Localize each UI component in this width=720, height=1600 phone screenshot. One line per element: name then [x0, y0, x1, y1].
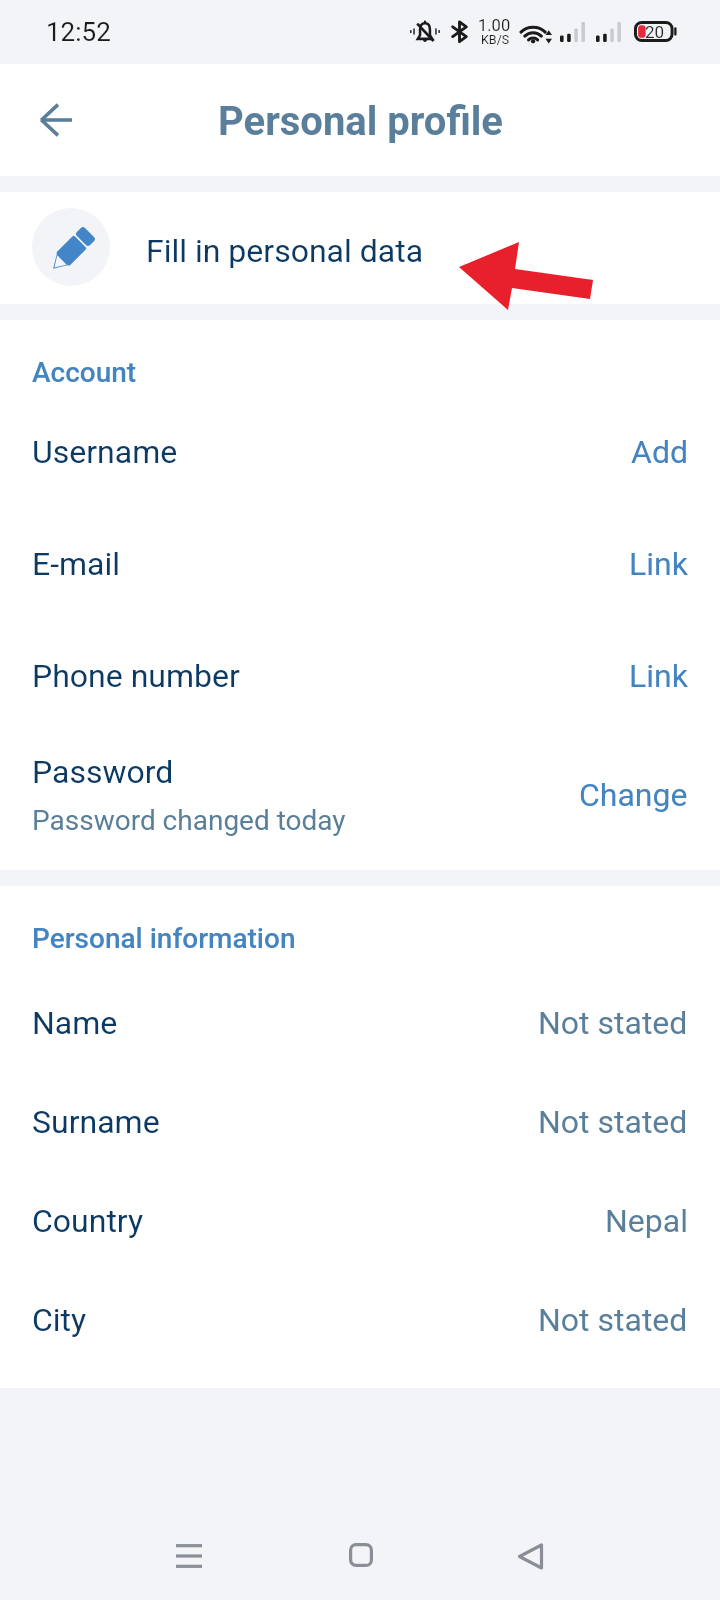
button[interactable]: Surname: [0, 985, 720, 1084]
button[interactable]: Phone number: [0, 544, 720, 643]
button[interactable]: Country: [0, 1084, 720, 1183]
staticText: Phone number: [32, 657, 240, 695]
staticText: Not stated: [538, 1301, 688, 1339]
staticText: Add: [631, 433, 688, 471]
button[interactable]: Recent apps: [149, 1516, 229, 1596]
staticText: Link: [629, 545, 688, 583]
button[interactable]: City: [0, 1183, 720, 1282]
staticText: Link: [629, 657, 688, 695]
staticText: Username: [32, 433, 178, 471]
button[interactable]: Home: [321, 1515, 401, 1595]
staticText: 20: [645, 22, 665, 42]
button[interactable]: Back: [16, 80, 96, 160]
button[interactable]: Name: [0, 886, 720, 985]
staticText: Country: [32, 1202, 144, 1240]
staticText: Personal information: [32, 922, 296, 955]
staticText: Account: [32, 356, 137, 389]
staticText: Not stated: [538, 1103, 688, 1141]
staticText: KB/S: [481, 32, 510, 47]
button[interactable]: Fill in personal data: [0, 192, 720, 304]
staticText: Personal profile: [218, 98, 503, 145]
staticText: E-mail: [32, 545, 121, 583]
staticText: City: [32, 1301, 87, 1339]
button[interactable]: E-mail: [0, 432, 720, 531]
staticText: Change: [579, 776, 688, 814]
staticText: Name: [32, 1004, 118, 1042]
staticText: Password: [32, 753, 174, 791]
button[interactable]: Password: [0, 656, 720, 768]
staticText: Fill in personal data: [146, 232, 424, 270]
staticText: 12:52: [46, 17, 111, 47]
staticText: 1.00: [478, 16, 511, 35]
staticText: Not stated: [538, 1004, 688, 1042]
button[interactable]: Username: [0, 320, 720, 419]
button[interactable]: Back: [490, 1516, 570, 1596]
staticText: Nepal: [605, 1202, 688, 1240]
staticText: Surname: [32, 1103, 160, 1141]
staticText: Password changed today: [32, 804, 346, 837]
